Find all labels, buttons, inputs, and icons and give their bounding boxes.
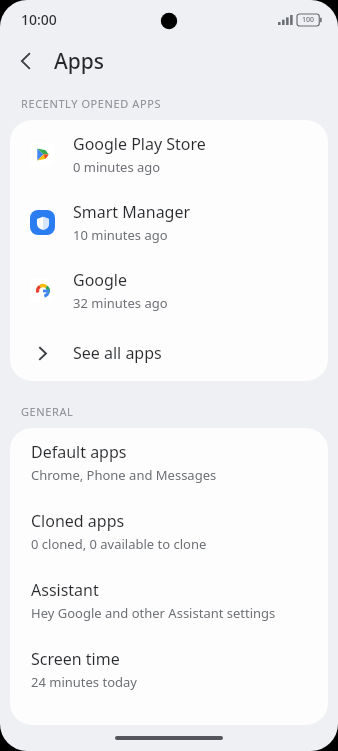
staticText: 24 minutes today — [31, 673, 137, 691]
staticText: RECENTLY OPENED APPS — [21, 96, 162, 111]
staticText: GENERAL — [21, 404, 74, 419]
button[interactable]: Back — [6, 41, 46, 81]
staticText: 0 cloned, 0 available to clone — [31, 535, 207, 553]
staticText: 100 — [302, 15, 315, 25]
staticText: Apps — [54, 47, 105, 76]
button[interactable]: Smart Manager — [10, 188, 328, 256]
staticText: Google Play Store — [73, 133, 206, 155]
staticText: 10:00 — [21, 10, 57, 29]
button[interactable]: See all apps — [10, 324, 328, 381]
button[interactable]: Cloned apps — [10, 497, 328, 566]
staticText: 10 minutes ago — [73, 226, 168, 244]
staticText: Chrome, Phone and Messages — [31, 466, 217, 484]
button[interactable]: Assistant — [10, 566, 328, 635]
staticText: Smart Manager — [73, 201, 191, 223]
staticText: Google — [73, 269, 128, 291]
button[interactable]: Default apps — [10, 428, 328, 497]
button[interactable]: Screen time — [10, 635, 328, 704]
staticText: Assistant — [31, 579, 99, 601]
staticText: 32 minutes ago — [73, 294, 168, 312]
staticText: See all apps — [73, 342, 162, 364]
staticText: Cloned apps — [31, 510, 125, 532]
staticText: Hey Google and other Assistant settings — [31, 604, 276, 622]
staticText: Default apps — [31, 441, 127, 463]
staticText: Screen time — [31, 648, 120, 670]
staticText: 0 minutes ago — [73, 158, 161, 176]
button[interactable]: Google — [10, 256, 328, 324]
button[interactable]: Google Play Store — [10, 120, 328, 188]
